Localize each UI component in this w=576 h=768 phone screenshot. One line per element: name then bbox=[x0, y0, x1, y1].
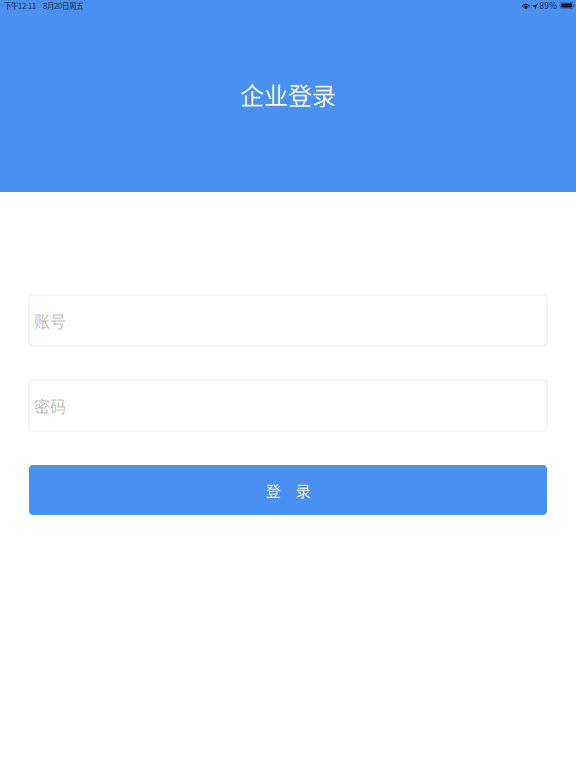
staticText: 账号 bbox=[34, 309, 66, 332]
staticText: 8月20日周五 bbox=[43, 0, 83, 11]
staticText: 登 录 bbox=[265, 479, 310, 501]
staticText: 下午12:11 bbox=[4, 0, 36, 11]
staticText: 企业登录 bbox=[240, 77, 336, 112]
staticText: 密码 bbox=[34, 394, 66, 417]
staticText: 89% bbox=[539, 0, 557, 11]
button[interactable]: 密码输入框 bbox=[29, 380, 547, 431]
button[interactable]: 登 录 bbox=[29, 465, 547, 515]
button[interactable]: 账号输入框 bbox=[29, 295, 547, 346]
